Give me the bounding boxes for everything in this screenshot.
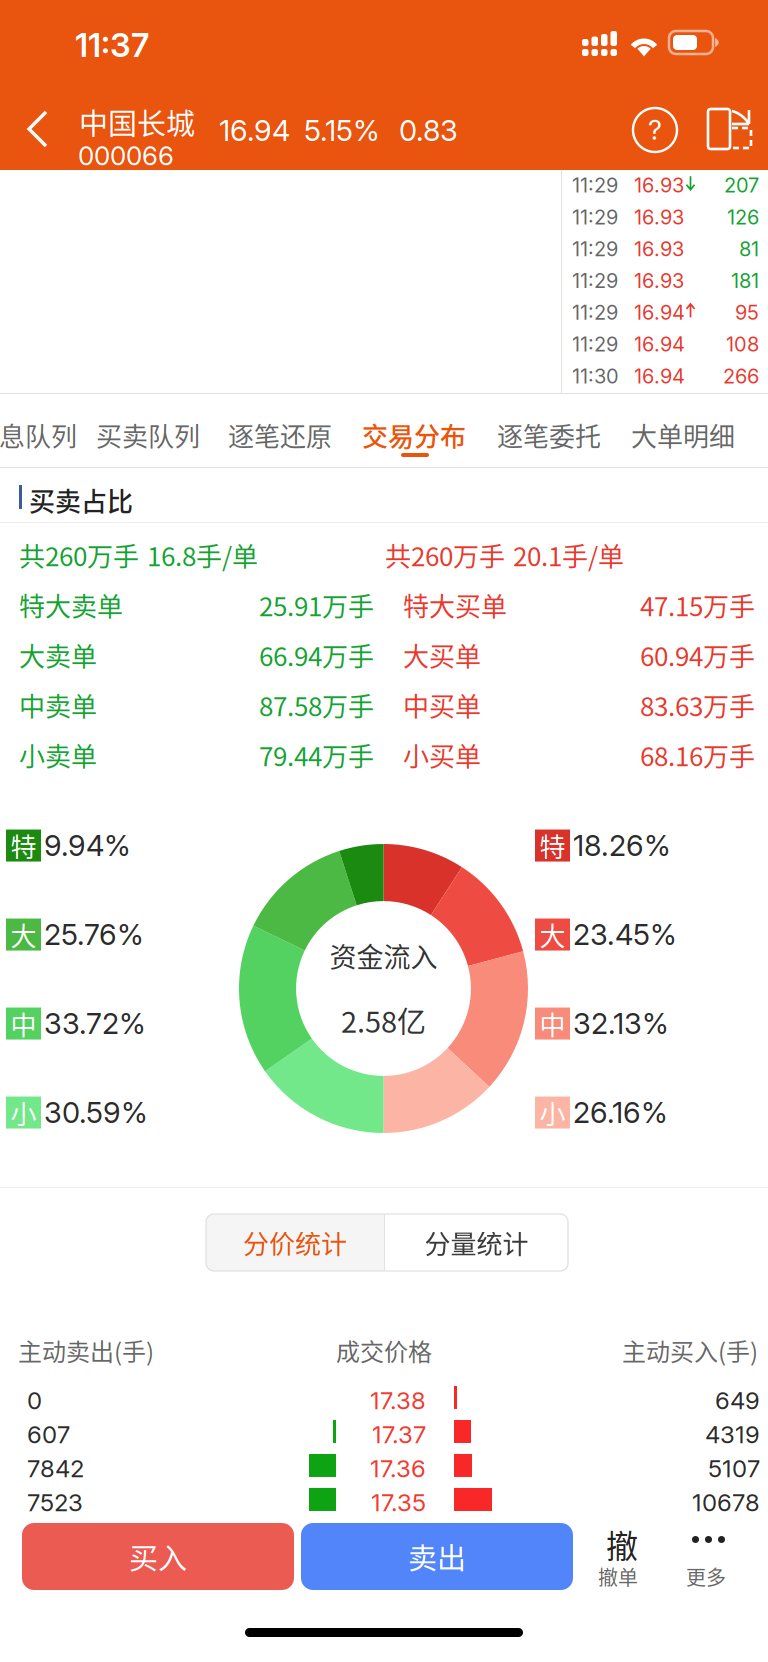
staticText: 32.13%	[573, 1006, 669, 1041]
staticText: 649	[715, 1386, 760, 1415]
staticText: 中卖单	[19, 686, 97, 724]
staticText: 中	[10, 1005, 36, 1042]
staticText: 11:30	[572, 364, 619, 388]
staticText: 逐笔委托	[497, 416, 601, 454]
staticText: 更多	[686, 1562, 726, 1591]
staticText: 主动买入(手)	[622, 1333, 758, 1368]
staticText: 30.59%	[44, 1095, 148, 1130]
staticText: 17.36	[370, 1454, 426, 1483]
staticText: 181	[731, 269, 759, 293]
button[interactable]: Split screen	[708, 109, 754, 151]
staticText: 9.94%	[44, 828, 131, 863]
staticText: 47.15万手	[640, 586, 755, 624]
button[interactable]: 撤	[584, 1518, 656, 1590]
staticText: 68.16万手	[640, 736, 755, 774]
staticText: 共260万手	[385, 536, 505, 574]
staticText: 266	[723, 364, 759, 388]
staticText: 11:29	[572, 173, 618, 197]
staticText: 17.37	[372, 1420, 426, 1449]
staticText: 11:37	[75, 25, 149, 65]
staticText: 25.76%	[44, 917, 144, 952]
staticText: 小	[10, 1094, 36, 1131]
staticText: 000066	[78, 140, 174, 171]
staticText: 买卖队列	[96, 416, 200, 454]
staticText: 逐笔还原	[228, 416, 332, 454]
staticText: 共260万手	[19, 536, 139, 574]
staticText: 中买单	[403, 686, 481, 724]
staticText: 60.94万手	[640, 636, 755, 674]
staticText: 83.63万手	[640, 686, 755, 724]
button[interactable]: 买卖队列	[96, 394, 202, 467]
staticText: 16.94	[634, 300, 685, 325]
staticText: 卖出	[408, 1535, 466, 1577]
staticText: 79.44万手	[259, 736, 374, 774]
staticText: 26.16%	[573, 1095, 668, 1130]
staticText: 大单明细	[631, 416, 735, 454]
button[interactable]: Help	[625, 100, 685, 160]
button[interactable]: 信息队列	[0, 394, 79, 467]
staticText: 0	[27, 1386, 42, 1415]
button[interactable]: 逐笔委托	[497, 394, 603, 467]
staticText: 交易分布	[362, 416, 466, 454]
staticText: 11:29	[572, 332, 618, 356]
staticText: 0.83	[399, 113, 458, 148]
staticText: 特大卖单	[19, 586, 123, 624]
staticText: 特	[10, 827, 36, 864]
staticText: 126	[727, 205, 759, 229]
staticText: 买卖占比	[29, 481, 133, 519]
staticText: 大	[10, 916, 36, 953]
staticText: 7842	[27, 1454, 84, 1483]
staticText: 资金流入	[329, 936, 437, 975]
staticText: 中	[539, 1005, 565, 1042]
staticText: ?	[648, 114, 662, 146]
staticText: 11:29	[572, 269, 618, 293]
staticText: 11:29	[572, 205, 618, 229]
staticText: 撤	[606, 1521, 638, 1567]
staticText: 5.15%	[304, 113, 380, 148]
staticText: 16.93	[634, 173, 684, 197]
staticText: 17.35	[371, 1488, 426, 1517]
staticText: 81	[739, 237, 759, 261]
staticText: 5107	[708, 1454, 760, 1483]
staticText: 108	[726, 332, 759, 356]
button[interactable]: 大单明细	[631, 394, 737, 467]
staticText: 607	[27, 1420, 70, 1449]
staticText: 16.94	[634, 364, 685, 388]
staticText: 10678	[692, 1488, 760, 1517]
staticText: 小卖单	[19, 736, 97, 774]
staticText: 特大买单	[403, 586, 507, 624]
staticText: 16.93	[634, 269, 684, 293]
staticText: 16.94	[634, 332, 685, 356]
staticText: 小	[539, 1094, 565, 1131]
staticText: 18.26%	[573, 828, 671, 863]
staticText: 特	[539, 827, 565, 864]
button[interactable]: 分量统计	[385, 1214, 568, 1271]
staticText: 16.8手/单	[147, 536, 258, 574]
button[interactable]: 买入	[22, 1523, 294, 1590]
staticText: 信息队列	[0, 416, 77, 454]
staticText: 小买单	[403, 736, 481, 774]
button[interactable]: 交易分布	[362, 394, 468, 467]
staticText: 7523	[27, 1488, 83, 1517]
staticText: 中国长城	[79, 101, 195, 143]
staticText: 2.58亿	[341, 999, 426, 1041]
staticText: 大买单	[403, 636, 481, 674]
staticText: 撤单	[598, 1562, 638, 1591]
button[interactable]: Back	[18, 100, 80, 158]
button[interactable]: 更多	[672, 1518, 744, 1590]
staticText: 95	[735, 300, 759, 325]
staticText: 33.72%	[44, 1006, 146, 1041]
button[interactable]: 逐笔还原	[228, 394, 334, 467]
staticText: 买入	[129, 1535, 187, 1577]
staticText: 4319	[705, 1420, 760, 1449]
staticText: 16.93	[634, 237, 684, 261]
staticText: 16.93	[634, 205, 684, 229]
staticText: 分量统计	[424, 1224, 528, 1261]
staticText: 主动卖出(手)	[18, 1333, 154, 1368]
button[interactable]: 分价统计	[206, 1214, 384, 1271]
button[interactable]: 卖出	[301, 1523, 573, 1590]
staticText: 23.45%	[573, 917, 677, 952]
staticText: 25.91万手	[259, 586, 374, 624]
staticText: 16.94	[219, 113, 290, 148]
staticText: 大	[539, 916, 565, 953]
